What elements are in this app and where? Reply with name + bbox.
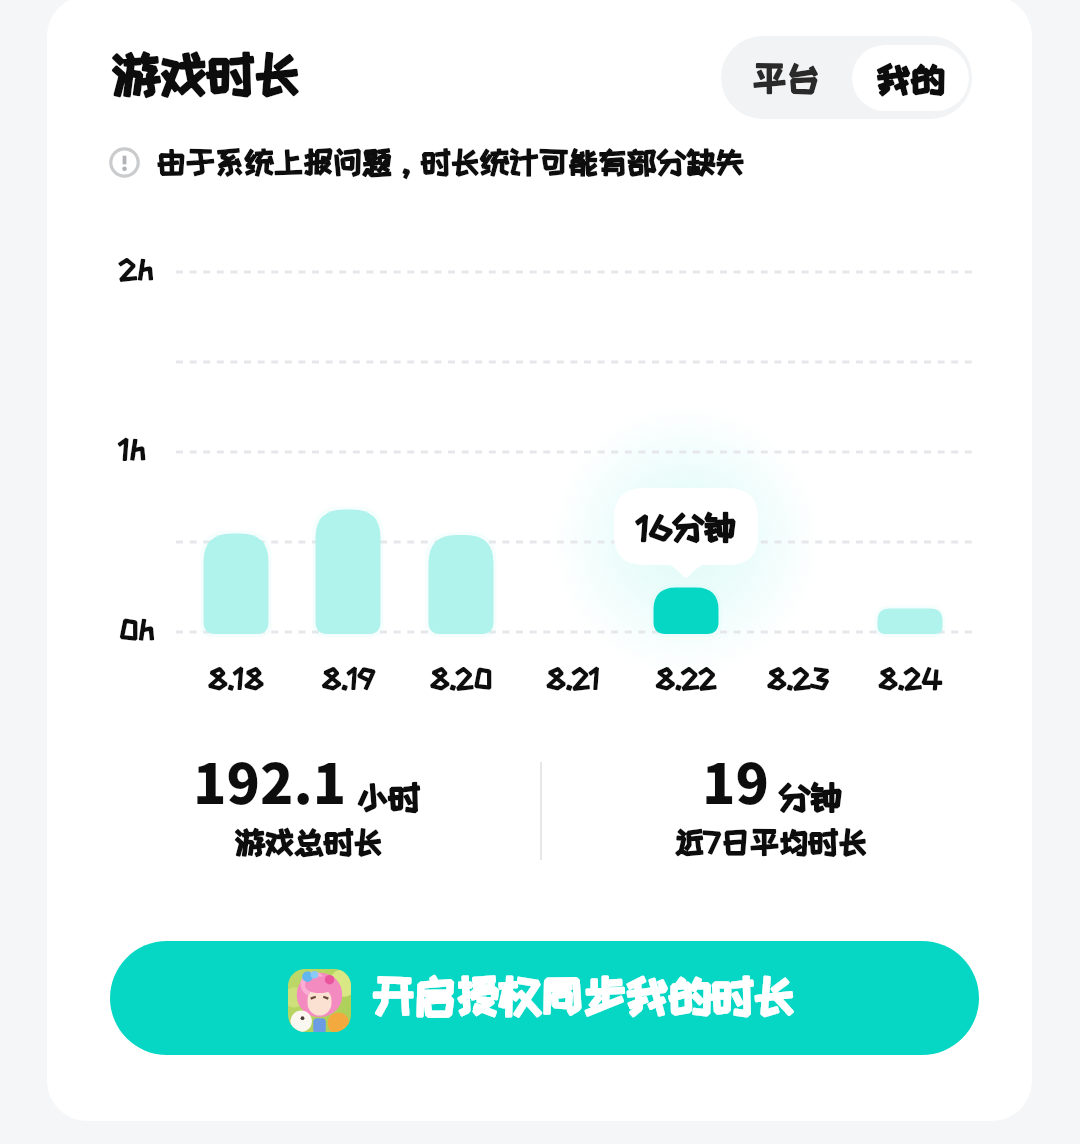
staticText: 8.20	[411, 664, 511, 692]
button[interactable]: 8.24	[860, 272, 960, 692]
button[interactable]: 8.22	[636, 272, 736, 692]
staticText: 开启授权同步我的时长	[372, 973, 892, 1019]
staticText: 8.24	[860, 664, 960, 692]
staticText: 近7日平均时长	[551, 826, 991, 858]
staticText: 游戏时长	[113, 48, 433, 99]
staticText: 分钟	[779, 780, 869, 814]
staticText: 8.18	[186, 664, 286, 692]
staticText: 8.19	[298, 664, 398, 692]
staticText: 8.22	[636, 664, 736, 692]
staticText: 8.18	[186, 664, 286, 692]
staticText: 8.20	[411, 664, 511, 692]
staticText: 1h	[119, 434, 179, 463]
staticText: 8.21	[523, 664, 623, 692]
staticText: 8.22	[636, 664, 736, 692]
staticText: 8.23	[748, 664, 848, 692]
staticText: 由于系统上报问题，时长统计可能有部分缺失	[156, 146, 816, 178]
staticText: 由于系统上报问题，时长统计可能有部分缺失	[156, 146, 816, 178]
staticText: 0h	[119, 614, 179, 643]
button[interactable]: 8.23	[748, 272, 848, 692]
staticText: 192.1	[193, 740, 347, 820]
staticText: 近7日平均时长	[551, 826, 991, 858]
staticText: 开启授权同步我的时长	[372, 973, 892, 1019]
button[interactable]: 平台	[721, 36, 852, 119]
button[interactable]: 开启授权同步我的时长	[110, 941, 979, 1055]
staticText: 游戏时长	[113, 48, 433, 99]
staticText: 19	[702, 740, 769, 820]
staticText: 小时	[357, 780, 447, 814]
staticText: 16分钟	[614, 510, 758, 544]
staticText: 分钟	[779, 780, 869, 814]
other: 提示说明	[109, 147, 140, 178]
staticText: 我的	[852, 60, 969, 97]
staticText: 游戏总时长	[89, 826, 529, 858]
staticText: 8.23	[748, 664, 848, 692]
staticText: 8.24	[860, 664, 960, 692]
button[interactable]: 8.19	[298, 272, 398, 692]
staticText: 16分钟	[614, 510, 758, 544]
staticText: 2h	[119, 254, 179, 283]
staticText: 8.21	[523, 664, 623, 692]
staticText: 1h	[119, 434, 179, 463]
button[interactable]: 8.20	[411, 272, 511, 692]
staticText: 0h	[119, 614, 179, 643]
staticText: 平台	[721, 59, 852, 96]
staticText: 我的	[852, 60, 969, 97]
staticText: 游戏总时长	[89, 826, 529, 858]
button[interactable]: 提示说明	[109, 146, 816, 178]
staticText: 2h	[119, 254, 179, 283]
staticText: 8.19	[298, 664, 398, 692]
button[interactable]: 8.21	[523, 272, 623, 692]
button[interactable]: 我的	[852, 45, 969, 111]
staticText: 小时	[357, 780, 447, 814]
staticText: 平台	[721, 59, 852, 96]
button[interactable]: 8.18	[186, 272, 286, 692]
